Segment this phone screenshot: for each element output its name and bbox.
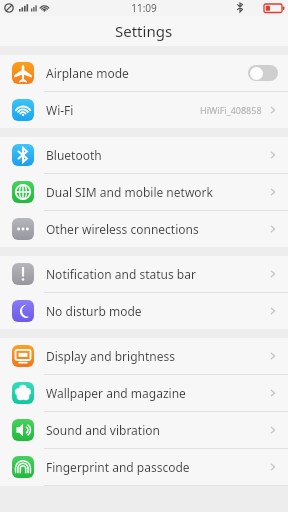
staticText: Other wireless connections — [46, 221, 268, 237]
button[interactable]: Wi-Fi — [0, 92, 288, 128]
staticText: Notification and status bar — [46, 266, 268, 282]
staticText: HiWiFi_408858 — [200, 104, 262, 116]
button[interactable]: Fingerprint and passcode — [0, 449, 288, 485]
staticText: Wallpaper and magazine — [46, 385, 268, 401]
button[interactable]: Airplane mode toggle — [248, 65, 278, 81]
staticText: Settings — [115, 21, 173, 41]
staticText: Dual SIM and mobile network — [46, 184, 268, 200]
staticText: 11:09 — [131, 1, 157, 15]
button[interactable]: Wallpaper and magazine — [0, 375, 288, 411]
button[interactable]: Notification and status bar — [0, 256, 288, 292]
staticText: No disturb mode — [46, 303, 268, 319]
button[interactable]: Airplane mode — [0, 55, 288, 91]
staticText: Display and brightness — [46, 348, 268, 364]
staticText: Bluetooth — [46, 147, 268, 163]
button[interactable]: Dual SIM and mobile network — [0, 174, 288, 210]
button[interactable]: Display and brightness — [0, 338, 288, 374]
button[interactable]: No disturb mode — [0, 293, 288, 329]
staticText: Fingerprint and passcode — [46, 459, 268, 475]
staticText: Wi-Fi — [46, 102, 200, 118]
button[interactable]: Bluetooth — [0, 137, 288, 173]
button[interactable]: Other wireless connections — [0, 211, 288, 247]
staticText: Sound and vibration — [46, 422, 268, 438]
button[interactable]: Sound and vibration — [0, 412, 288, 448]
staticText: Airplane mode — [46, 65, 248, 81]
